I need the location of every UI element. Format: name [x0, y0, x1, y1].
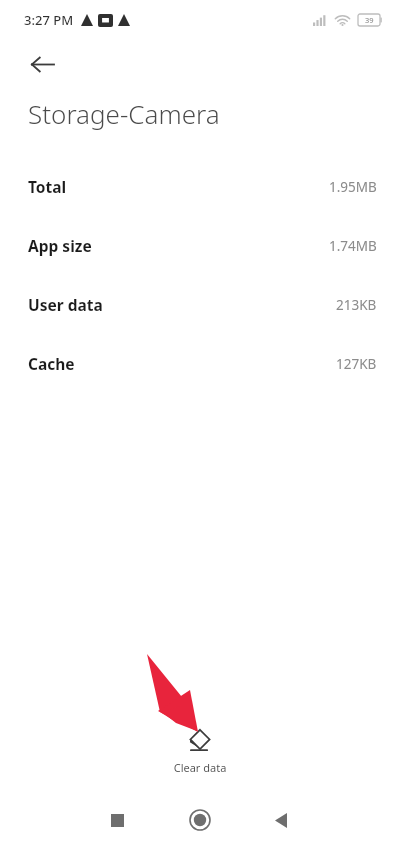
button[interactable]: Back [259, 798, 303, 842]
button[interactable]: App size [0, 216, 400, 275]
button[interactable]: Cache [0, 334, 400, 393]
button[interactable]: User data [0, 275, 400, 334]
staticText: 39 [365, 15, 374, 25]
staticText: 3:27 PM [24, 11, 74, 29]
staticText: Storage-Camera [28, 96, 220, 131]
button[interactable]: Back [18, 40, 66, 88]
staticText: Total [28, 176, 67, 197]
staticText: 1.95MB [329, 178, 377, 196]
staticText: User data [28, 294, 103, 315]
staticText: Clear data [152, 760, 248, 775]
staticText: 1.74MB [329, 237, 377, 255]
button[interactable]: Recents [95, 798, 139, 842]
staticText: Cache [28, 353, 75, 374]
staticText: 213KB [336, 296, 377, 314]
button[interactable]: Total [0, 157, 400, 216]
staticText: 127KB [336, 355, 377, 373]
button[interactable]: Home [177, 797, 223, 843]
button[interactable]: Clear data [152, 728, 248, 775]
staticText: App size [28, 235, 92, 256]
